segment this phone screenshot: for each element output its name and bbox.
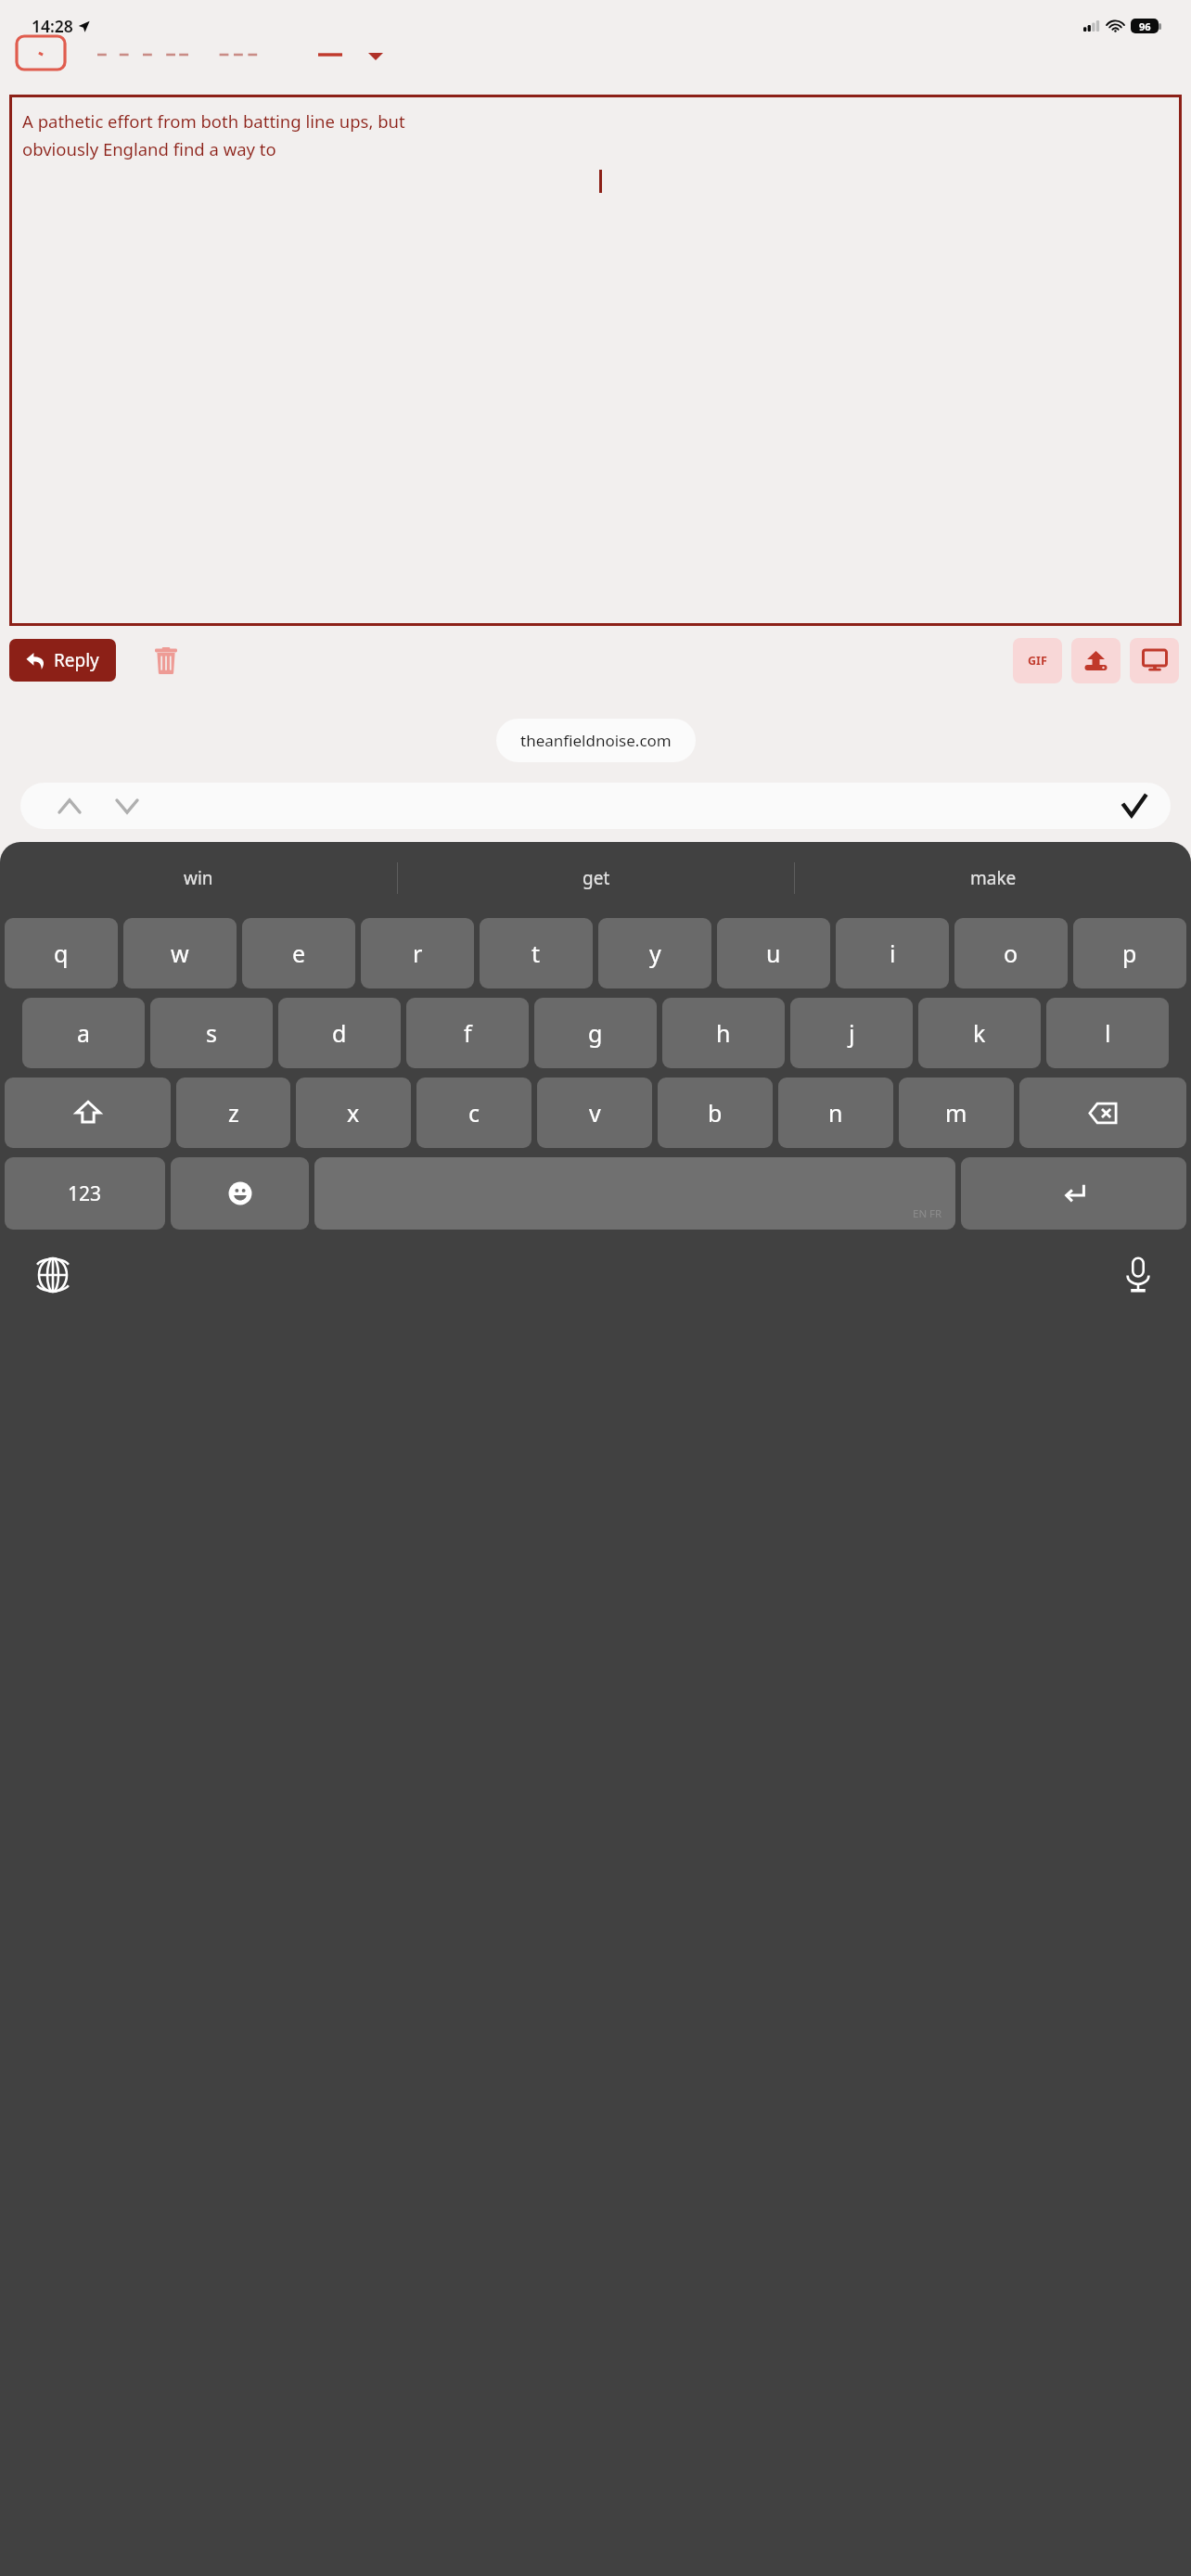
- staticText: u: [766, 937, 781, 969]
- button[interactable]: f: [406, 998, 529, 1068]
- staticText: get: [583, 866, 610, 890]
- staticText: t: [531, 937, 541, 969]
- button[interactable]: c: [416, 1078, 531, 1148]
- button[interactable]: theanfieldnoise.com: [496, 719, 696, 762]
- staticText: k: [973, 1017, 986, 1049]
- button[interactable]: A pathetic effort from both batting line…: [9, 95, 1182, 626]
- staticText: x: [347, 1097, 360, 1129]
- staticText: make: [970, 866, 1017, 890]
- staticText: w: [171, 937, 189, 969]
- staticText: win: [184, 866, 213, 890]
- button[interactable]: Voice input: [1106, 1243, 1171, 1307]
- button[interactable]: b: [658, 1078, 773, 1148]
- button[interactable]: z: [176, 1078, 290, 1148]
- button[interactable]: Reply: [9, 639, 116, 682]
- button[interactable]: l: [1046, 998, 1169, 1068]
- button[interactable]: get: [398, 842, 794, 914]
- staticText: s: [206, 1017, 217, 1049]
- staticText: Reply: [54, 648, 99, 672]
- button[interactable]: s: [150, 998, 273, 1068]
- button[interactable]: p: [1073, 918, 1186, 988]
- staticText: theanfieldnoise.com: [520, 730, 672, 751]
- button[interactable]: y: [598, 918, 711, 988]
- button[interactable]: Enter: [961, 1157, 1186, 1230]
- button[interactable]: Upload: [1071, 638, 1121, 683]
- staticText: EN FR: [913, 1206, 942, 1221]
- button[interactable]: Backspace: [1019, 1078, 1186, 1148]
- button[interactable]: k: [918, 998, 1041, 1068]
- button[interactable]: Shift: [5, 1078, 171, 1148]
- staticText: 96: [1139, 19, 1151, 33]
- staticText: l: [1105, 1017, 1111, 1049]
- staticText: h: [716, 1017, 731, 1049]
- button[interactable]: Delete: [144, 638, 188, 682]
- button[interactable]: w: [123, 918, 237, 988]
- staticText: d: [332, 1017, 347, 1049]
- staticText: v: [589, 1097, 601, 1129]
- button[interactable]: Emoji: [171, 1157, 309, 1230]
- staticText: z: [228, 1097, 239, 1129]
- button[interactable]: g: [534, 998, 657, 1068]
- button[interactable]: Screen: [1130, 638, 1179, 683]
- staticText: y: [649, 937, 661, 969]
- button[interactable]: x: [296, 1078, 411, 1148]
- button[interactable]: win: [0, 842, 397, 914]
- staticText: a: [77, 1017, 91, 1049]
- button[interactable]: j: [790, 998, 913, 1068]
- staticText: j: [849, 1017, 855, 1049]
- staticText: o: [1004, 937, 1018, 969]
- button[interactable]: Done: [1111, 783, 1158, 829]
- button[interactable]: t: [480, 918, 593, 988]
- button[interactable]: h: [662, 998, 785, 1068]
- button[interactable]: d: [278, 998, 401, 1068]
- button[interactable]: m: [899, 1078, 1014, 1148]
- button[interactable]: u: [717, 918, 830, 988]
- staticText: p: [1122, 937, 1137, 969]
- staticText: i: [890, 937, 896, 969]
- staticText: obviously England find a way to: [22, 137, 276, 160]
- button[interactable]: n: [778, 1078, 893, 1148]
- staticText: 14:28: [32, 15, 73, 37]
- staticText: e: [292, 937, 306, 969]
- button[interactable]: Change language: [20, 1243, 85, 1307]
- staticText: m: [945, 1097, 967, 1129]
- button[interactable]: Space: [314, 1157, 955, 1230]
- button[interactable]: make: [795, 842, 1191, 914]
- staticText: r: [413, 937, 423, 969]
- staticText: g: [588, 1017, 603, 1049]
- staticText: b: [708, 1097, 723, 1129]
- button[interactable]: q: [5, 918, 118, 988]
- button[interactable]: e: [242, 918, 355, 988]
- button[interactable]: v: [537, 1078, 652, 1148]
- button[interactable]: GIF: [1013, 638, 1062, 683]
- staticText: q: [54, 937, 69, 969]
- staticText: f: [464, 1017, 472, 1049]
- button[interactable]: 123: [5, 1157, 165, 1230]
- button[interactable]: o: [954, 918, 1068, 988]
- staticText: c: [468, 1097, 480, 1129]
- staticText: GIF: [1028, 653, 1047, 669]
- staticText: n: [828, 1097, 843, 1129]
- button[interactable]: Previous field: [48, 784, 91, 827]
- staticText: A pathetic effort from both batting line…: [22, 109, 405, 133]
- button[interactable]: Next field: [106, 784, 148, 827]
- button[interactable]: i: [836, 918, 949, 988]
- button[interactable]: a: [22, 998, 145, 1068]
- button[interactable]: r: [361, 918, 474, 988]
- staticText: 123: [68, 1180, 102, 1207]
